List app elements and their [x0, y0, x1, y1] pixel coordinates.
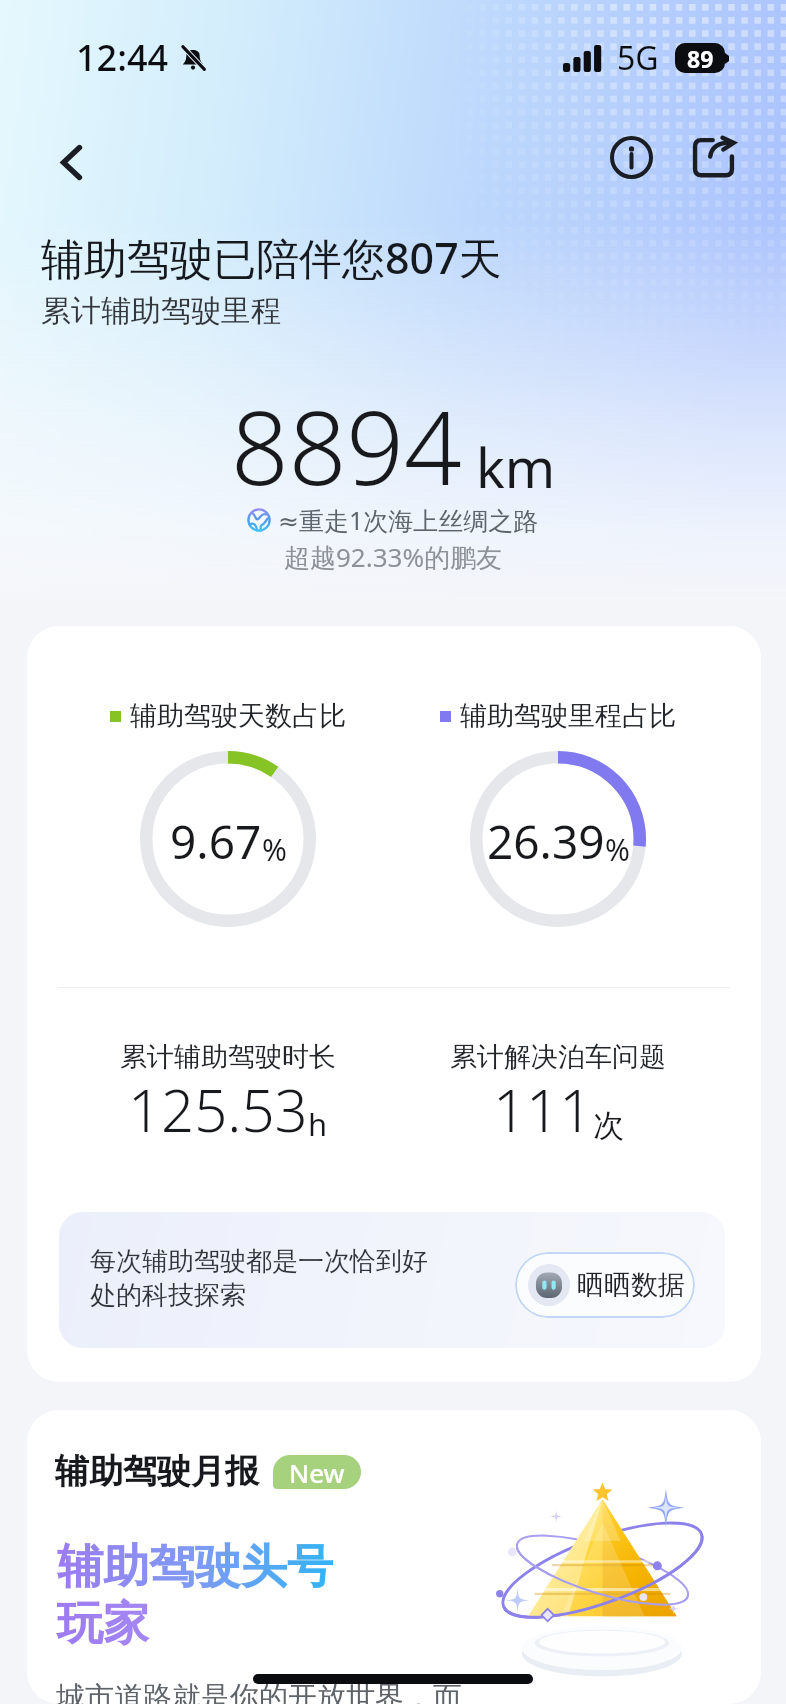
staticText: 辅助驾驶天数占比	[130, 699, 346, 733]
staticText: %	[605, 829, 630, 870]
staticText: 累计解决泊车问题	[450, 1040, 666, 1074]
staticText: 晒晒数据	[577, 1268, 685, 1302]
staticText: 89	[687, 43, 714, 73]
staticText: 辅助驾驶月报	[55, 1450, 259, 1493]
staticText: 111	[493, 1070, 593, 1149]
staticText: h	[308, 1103, 328, 1145]
staticText: km	[476, 430, 556, 504]
button[interactable]: Back	[39, 130, 103, 194]
staticText: 超越92.33%的鹏友	[284, 539, 503, 575]
staticText: 每次辅助驾驶都是一次恰到好	[90, 1245, 428, 1278]
staticText: 累计辅助驾驶时长	[120, 1040, 336, 1074]
staticText: 125.53	[128, 1070, 308, 1149]
staticText: ≈重走1次海上丝绸之路	[278, 503, 539, 537]
staticText: 辅助驾驶里程占比	[460, 699, 676, 733]
button[interactable]: Info	[599, 125, 663, 189]
staticText: 处的科技探索	[90, 1279, 246, 1312]
staticText: %	[262, 829, 287, 870]
staticText: 玩家	[57, 1595, 149, 1653]
staticText: New	[289, 1455, 345, 1489]
button[interactable]: 晒晒数据	[515, 1252, 695, 1318]
staticText: 5G	[617, 36, 659, 80]
staticText: 辅助驾驶已陪伴您807天	[41, 228, 502, 287]
button[interactable]: Share	[681, 124, 745, 188]
staticText: 9.67	[170, 810, 262, 873]
staticText: 累计辅助驾驶里程	[41, 292, 281, 330]
staticText: 城市道路就是你的开放世界，而	[56, 1679, 462, 1704]
staticText: 12:44	[76, 33, 169, 82]
staticText: 26.39	[487, 810, 605, 873]
staticText: 辅助驾驶头号	[57, 1538, 333, 1596]
staticText: 次	[593, 1106, 624, 1145]
staticText: 8894	[231, 377, 462, 515]
